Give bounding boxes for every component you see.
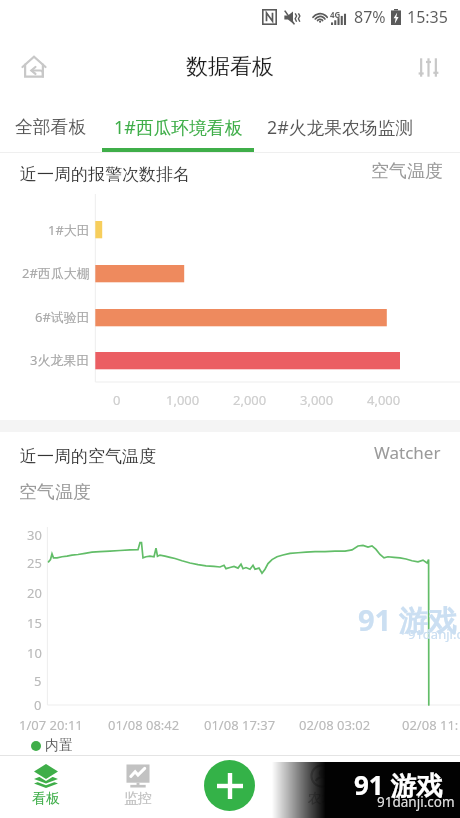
- button[interactable]: 1#西瓜环境看板: [102, 101, 254, 152]
- staticText: 4G: [330, 9, 341, 20]
- staticText: 6#试验田: [35, 308, 90, 326]
- staticText: 87%: [354, 6, 386, 28]
- staticText: 10: [27, 644, 42, 662]
- button[interactable]: 全部看板: [0, 101, 102, 152]
- staticText: 91danji.com: [408, 625, 460, 643]
- button[interactable]: Filter settings: [404, 43, 452, 91]
- staticText: 2#西瓜大棚: [22, 264, 90, 282]
- staticText: 看板: [32, 790, 60, 808]
- staticText: 空气温度: [371, 160, 443, 183]
- staticText: 1/07 20:11: [19, 716, 83, 734]
- staticText: 5: [34, 672, 42, 690]
- button[interactable]: 农场: [276, 756, 368, 818]
- staticText: 监控: [124, 790, 152, 808]
- staticText: 15:35: [407, 6, 448, 28]
- staticText: 1#西瓜环境看板: [114, 115, 243, 139]
- button[interactable]: 2#火龙果农场监测: [254, 101, 426, 152]
- staticText: 2#火龙果农场监测: [267, 115, 414, 139]
- staticText: 91 游戏: [354, 767, 443, 803]
- staticText: 农场: [308, 790, 336, 808]
- staticText: 近一周的空气温度: [20, 446, 156, 467]
- button[interactable]: Back to home: [10, 43, 58, 91]
- staticText: 我的: [400, 790, 428, 808]
- staticText: 02/08 03:02: [299, 716, 371, 734]
- staticText: 91danji.com: [377, 793, 455, 811]
- staticText: 20: [27, 584, 42, 602]
- staticText: 0: [34, 696, 42, 714]
- staticText: 1#大田: [48, 221, 90, 239]
- button[interactable]: 监控: [92, 756, 184, 818]
- staticText: 15: [27, 614, 42, 632]
- staticText: 01/08 17:37: [204, 716, 276, 734]
- staticText: 01/08 08:42: [108, 716, 180, 734]
- staticText: 30: [27, 526, 42, 544]
- staticText: 0: [113, 391, 121, 409]
- staticText: Watcher: [374, 441, 441, 464]
- staticText: 内置: [45, 737, 73, 755]
- staticText: 数据看板: [186, 53, 274, 81]
- staticText: 91 游戏: [358, 600, 457, 640]
- staticText: 4,000: [367, 391, 401, 409]
- staticText: 3,000: [300, 391, 334, 409]
- staticText: 空气温度: [19, 481, 91, 504]
- staticText: 全部看板: [15, 116, 87, 138]
- staticText: 1,000: [166, 391, 200, 409]
- staticText: 2,000: [233, 391, 267, 409]
- staticText: 3火龙果田: [30, 351, 90, 369]
- staticText: 02/08 11:: [402, 716, 459, 734]
- button[interactable]: Add: [204, 760, 255, 811]
- button[interactable]: 看板: [0, 756, 92, 818]
- staticText: 近一周的报警次数排名: [20, 164, 190, 185]
- button[interactable]: 我的: [368, 756, 460, 818]
- staticText: 25: [27, 554, 42, 572]
